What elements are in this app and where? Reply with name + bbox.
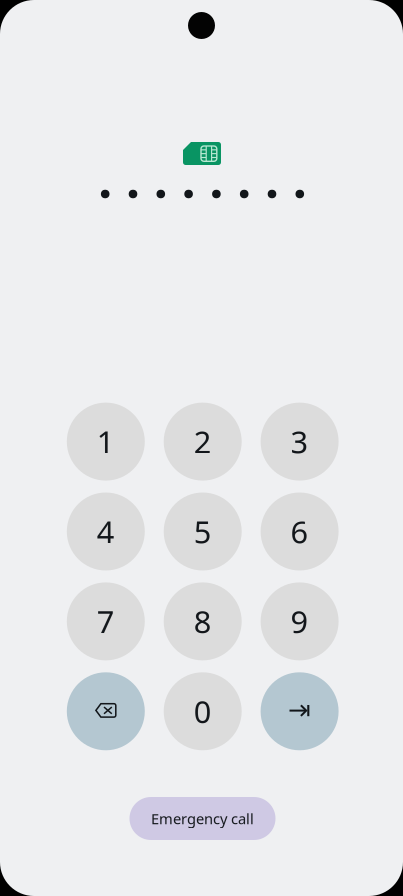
button[interactable]: 8 xyxy=(164,582,242,660)
button[interactable]: 9 xyxy=(261,582,339,660)
staticText: 5 xyxy=(194,511,212,552)
button[interactable]: Delete xyxy=(67,672,145,750)
staticText: 1 xyxy=(97,421,115,462)
button[interactable]: Emergency call xyxy=(129,797,275,840)
button[interactable]: 6 xyxy=(261,492,339,570)
staticText: 4 xyxy=(97,511,115,552)
button[interactable]: Enter xyxy=(261,672,339,750)
staticText: 6 xyxy=(291,511,309,552)
staticText: 8 xyxy=(194,600,212,642)
button[interactable]: 2 xyxy=(164,403,242,481)
staticText: 9 xyxy=(291,600,309,642)
button[interactable]: 1 xyxy=(67,403,145,481)
staticText: 2 xyxy=(194,421,212,462)
button[interactable]: 0 xyxy=(164,672,242,750)
staticText: Emergency call xyxy=(151,808,254,828)
button[interactable]: 3 xyxy=(261,403,339,481)
button[interactable]: 7 xyxy=(67,582,145,660)
staticText: 7 xyxy=(97,600,115,642)
button[interactable]: 5 xyxy=(164,492,242,570)
staticText: 3 xyxy=(291,421,309,462)
button[interactable]: 4 xyxy=(67,492,145,570)
staticText: 0 xyxy=(194,690,212,732)
